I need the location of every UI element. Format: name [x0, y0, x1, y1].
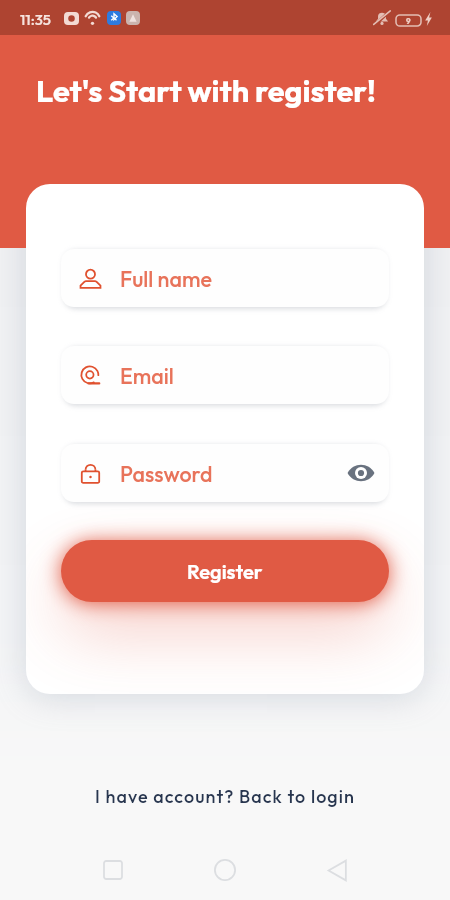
button[interactable]: Email: [61, 346, 389, 404]
button[interactable]: Show password: [339, 451, 383, 495]
staticText: Email: [120, 362, 174, 389]
button[interactable]: Recent apps: [88, 845, 138, 895]
button[interactable]: Full name: [61, 249, 389, 307]
button[interactable]: Register: [61, 540, 389, 602]
staticText: Let's Start with register!: [36, 71, 376, 110]
staticText: Password: [120, 460, 213, 487]
button[interactable]: Back: [312, 845, 362, 895]
staticText: 11:35: [20, 10, 51, 29]
button[interactable]: I have account? Back to login: [95, 785, 355, 808]
staticText: Full name: [120, 265, 212, 292]
button[interactable]: Home: [200, 845, 250, 895]
staticText: 9: [406, 16, 411, 26]
staticText: Register: [187, 559, 263, 584]
button[interactable]: Password: [61, 444, 389, 502]
